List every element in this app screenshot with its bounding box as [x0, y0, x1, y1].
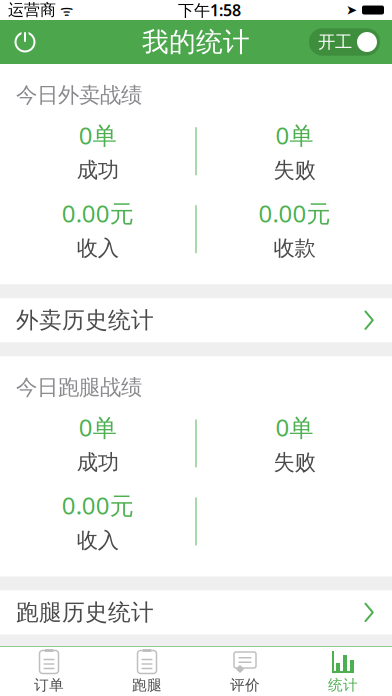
button[interactable]: 评价	[196, 647, 294, 696]
staticText: 统计	[328, 676, 358, 694]
button[interactable]: 统计	[294, 647, 392, 696]
staticText: 0单	[79, 119, 117, 151]
staticText: 跑腿	[132, 676, 162, 694]
staticText: 外卖历史统计	[16, 306, 154, 334]
button[interactable]: 电源	[0, 20, 50, 64]
staticText: 收入	[77, 527, 119, 553]
staticText: 失败	[273, 157, 315, 183]
button[interactable]: 外卖历史统计	[0, 298, 392, 342]
staticText: 今日跑腿战绩	[16, 374, 142, 400]
staticText: 成功	[77, 157, 119, 183]
staticText: 评价	[230, 676, 260, 694]
button[interactable]: 订单	[0, 647, 98, 696]
staticText: 开工	[318, 31, 352, 53]
staticText: 收款	[273, 235, 315, 261]
button[interactable]: 跑腿	[98, 647, 196, 696]
staticText: 0.00元	[258, 197, 330, 229]
button[interactable]: 开工	[309, 28, 380, 56]
staticText: 0单	[79, 411, 117, 443]
staticText: 0单	[275, 119, 313, 151]
staticText: 下午1:58	[178, 0, 241, 21]
staticText: ᯤ	[56, 0, 73, 20]
staticText: 0.00元	[62, 489, 134, 521]
staticText: 运营商	[8, 0, 56, 20]
staticText: 成功	[77, 449, 119, 475]
staticText: 0.00元	[62, 197, 134, 229]
staticText: 收入	[77, 235, 119, 261]
staticText: 0单	[275, 411, 313, 443]
staticText: 我的统计	[142, 26, 250, 58]
staticText: ➤	[346, 2, 357, 17]
staticText: 失败	[273, 449, 315, 475]
staticText: 订单	[34, 676, 64, 694]
staticText: 跑腿历史统计	[16, 598, 154, 626]
button[interactable]: 跑腿历史统计	[0, 590, 392, 634]
staticText: 今日外卖战绩	[16, 82, 142, 108]
